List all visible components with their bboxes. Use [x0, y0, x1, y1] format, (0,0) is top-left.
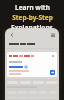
button[interactable]: Expand — [24, 65, 27, 68]
button[interactable]: Menu — [49, 31, 56, 38]
staticText: Learn with — [15, 3, 50, 12]
staticText: Step-by-Step — [12, 13, 53, 22]
button[interactable]: Submit — [50, 70, 55, 75]
button[interactable]: Back — [8, 31, 15, 38]
button[interactable]: Close — [7, 52, 57, 77]
button[interactable]: Close — [51, 54, 55, 58]
staticText: Explanations — [11, 23, 53, 32]
